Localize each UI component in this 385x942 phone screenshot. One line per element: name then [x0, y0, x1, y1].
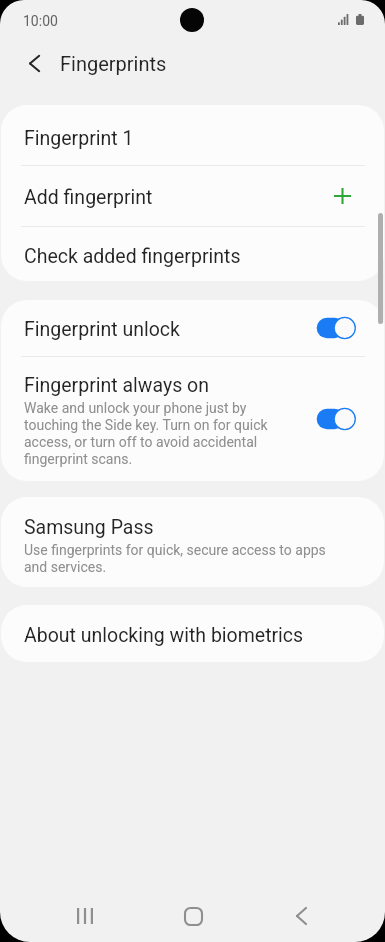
button[interactable]: Check added fingerprints — [1, 227, 384, 281]
staticText: 10:00 — [23, 13, 58, 29]
staticText: Use fingerprints for quick, secure acces… — [24, 542, 330, 576]
button[interactable]: Add fingerprint — [1, 166, 384, 226]
staticText: Add fingerprint — [24, 183, 326, 209]
button[interactable]: Fingerprint always on — [1, 357, 384, 481]
staticText: Fingerprint unlock — [24, 315, 310, 341]
button[interactable]: Back — [271, 890, 331, 942]
button[interactable]: About unlocking with biometrics — [1, 605, 384, 662]
button[interactable]: Home — [163, 890, 223, 942]
button[interactable]: Add fingerprint — [326, 180, 358, 212]
staticText: Fingerprints — [60, 52, 167, 75]
button[interactable]: Navigate up — [13, 42, 55, 84]
button[interactable]: Samsung Pass — [1, 497, 384, 587]
staticText: About unlocking with biometrics — [24, 621, 362, 647]
button[interactable]: Recent apps — [55, 890, 115, 942]
staticText: Check added fingerprints — [24, 242, 362, 268]
button[interactable]: Fingerprint 1 — [1, 105, 384, 165]
staticText: Wake and unlock your phone just by touch… — [24, 400, 274, 468]
staticText: Fingerprint always on — [24, 371, 209, 397]
button[interactable]: Toggle — [310, 402, 362, 436]
button[interactable]: Fingerprint unlock — [1, 300, 384, 356]
button[interactable]: Toggle — [310, 311, 362, 345]
staticText: Samsung Pass — [24, 513, 154, 539]
staticText: Fingerprint 1 — [24, 124, 362, 150]
